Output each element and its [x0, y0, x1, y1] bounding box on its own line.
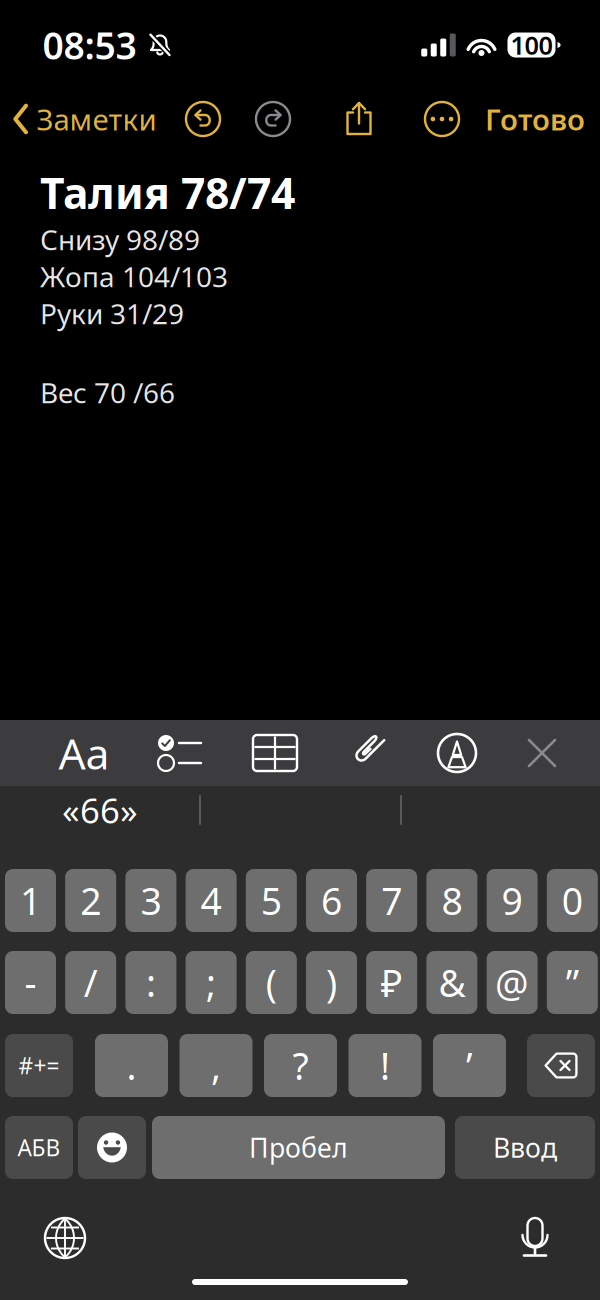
staticText: 5 [261, 876, 282, 925]
button[interactable]: & [426, 951, 477, 1014]
button[interactable]: Повторить [247, 93, 299, 145]
staticText: . [126, 1041, 136, 1090]
staticText: Руки 31/29 [40, 295, 184, 332]
button[interactable]: Следующий язык [35, 1208, 95, 1268]
button[interactable]: 3 [125, 869, 176, 932]
button[interactable]: Отменить [177, 93, 229, 145]
staticText: 7 [381, 876, 402, 925]
button[interactable]: ’ [433, 1034, 506, 1097]
button[interactable]: 8 [426, 869, 477, 932]
staticText: АБВ [17, 1132, 60, 1162]
button[interactable]: 2 [65, 869, 116, 932]
button[interactable]: Поделиться [333, 93, 385, 145]
staticText: 8 [441, 876, 462, 925]
button[interactable]: ( [246, 951, 297, 1014]
button[interactable]: Формат [50, 717, 117, 789]
button[interactable]: . [95, 1034, 168, 1097]
staticText: : [146, 958, 156, 1007]
button[interactable]: Эмодзи [78, 1116, 146, 1179]
button[interactable]: Вложение [339, 725, 395, 781]
button[interactable]: «66» [5, 786, 195, 834]
staticText: Жопа 104/103 [40, 258, 228, 295]
staticText: 0 [562, 876, 583, 925]
staticText: @ [495, 958, 529, 1007]
staticText: , [211, 1041, 221, 1090]
staticText: 3 [140, 876, 161, 925]
staticText: Ввод [493, 1130, 557, 1165]
button[interactable]: ! [348, 1034, 421, 1097]
button[interactable]: / [65, 951, 116, 1014]
button[interactable]: Заметки [0, 90, 166, 148]
button[interactable]: Таблица [245, 727, 305, 779]
button[interactable]: ) [306, 951, 357, 1014]
button[interactable]: Разметка [430, 726, 484, 780]
button[interactable]: Ещё [416, 93, 468, 145]
button[interactable]: Список [150, 726, 210, 780]
staticText: 6 [321, 876, 342, 925]
button[interactable]: - [5, 951, 56, 1014]
staticText: 4 [201, 876, 222, 925]
staticText: ₽ [381, 958, 403, 1007]
staticText: & [438, 958, 465, 1007]
button[interactable]: ” [547, 951, 598, 1014]
staticText: 08:53 [42, 20, 136, 70]
button[interactable]: Ввод [455, 1116, 595, 1179]
staticText: Снизу 98/89 [40, 221, 200, 258]
staticText: ( [266, 958, 277, 1007]
button[interactable]: @ [487, 951, 538, 1014]
button[interactable]: Пробел [152, 1116, 445, 1179]
staticText: / [84, 958, 98, 1007]
staticText: «66» [62, 787, 138, 833]
button[interactable]: 1 [5, 869, 56, 932]
button[interactable]: 6 [306, 869, 357, 932]
staticText: ) [326, 958, 337, 1007]
staticText: ; [206, 958, 216, 1007]
button[interactable]: 4 [186, 869, 237, 932]
button[interactable]: ? [264, 1034, 337, 1097]
button[interactable]: Диктовка [508, 1206, 562, 1270]
button[interactable]: АБВ [5, 1116, 73, 1179]
staticText: 2 [80, 876, 101, 925]
button[interactable]: : [125, 951, 176, 1014]
staticText: #+= [18, 1050, 59, 1080]
staticText: - [24, 958, 36, 1007]
button[interactable]: , [179, 1034, 252, 1097]
button[interactable]: 7 [366, 869, 417, 932]
button[interactable]: Удалить [527, 1034, 595, 1097]
staticText: 1 [20, 876, 41, 925]
staticText: Готово [485, 99, 585, 138]
staticText: 9 [502, 876, 523, 925]
button[interactable]: 0 [547, 869, 598, 932]
staticText: Aa [58, 725, 109, 781]
button[interactable]: 5 [246, 869, 297, 932]
staticText: Талия 78/74 [40, 164, 295, 221]
staticText: Заметки [36, 99, 156, 138]
staticText: ’ [466, 1041, 473, 1090]
staticText: ” [566, 958, 579, 1007]
button[interactable]: #+= [5, 1034, 73, 1097]
staticText: 100 [510, 28, 552, 62]
staticText: ! [380, 1041, 390, 1090]
button[interactable]: ₽ [366, 951, 417, 1014]
button[interactable]: Готово [473, 90, 597, 148]
staticText: Вес 70 /66 [40, 374, 175, 411]
button[interactable]: Закрыть [519, 730, 565, 776]
staticText: ? [292, 1041, 308, 1090]
button[interactable]: ; [186, 951, 237, 1014]
button[interactable]: 9 [487, 869, 538, 932]
staticText: Пробел [249, 1130, 348, 1165]
